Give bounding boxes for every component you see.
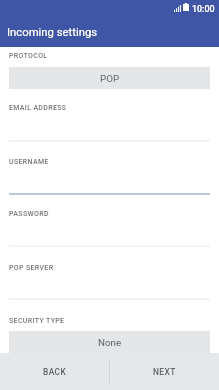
button[interactable]: BACK: [0, 353, 109, 390]
button[interactable]: NEXT: [109, 353, 219, 390]
staticText: POP: [100, 73, 120, 84]
staticText: NEXT: [153, 367, 176, 377]
staticText: PASSWORD: [9, 210, 49, 218]
staticText: SECURITY TYPE: [9, 317, 65, 325]
staticText: EMAIL ADDRESS: [9, 104, 67, 112]
staticText: Incoming settings: [7, 26, 98, 39]
staticText: BACK: [43, 367, 67, 377]
staticText: POP SERVER: [9, 264, 54, 272]
other: Signal strength: [174, 5, 181, 12]
staticText: USERNAME: [9, 158, 49, 166]
staticText: 10:00: [192, 4, 215, 14]
button[interactable]: POP: [9, 67, 210, 89]
button[interactable]: None: [9, 331, 210, 353]
staticText: None: [98, 337, 122, 348]
other: Battery: [183, 3, 189, 11]
staticText: PROTOCOL: [9, 52, 48, 60]
